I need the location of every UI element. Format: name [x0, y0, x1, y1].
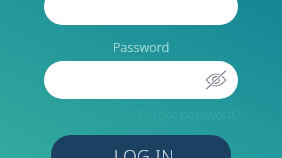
button[interactable]: LOG IN [51, 135, 231, 158]
staticText: Forgot password? [44, 106, 240, 123]
button[interactable] [44, 0, 238, 25]
staticText: LOG IN [114, 144, 175, 158]
button[interactable]: Forgot password? [44, 106, 240, 123]
button[interactable]: Hide password [44, 61, 238, 99]
button[interactable]: Hide password [205, 69, 227, 91]
staticText: Password [44, 38, 238, 56]
